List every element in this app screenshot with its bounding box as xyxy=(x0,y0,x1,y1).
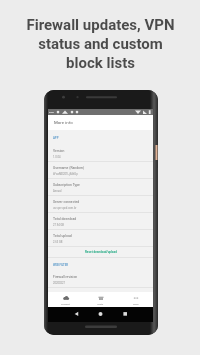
button[interactable]: Reset download/upload xyxy=(48,247,153,257)
staticText: Version xyxy=(53,149,65,153)
staticText: Reset download/upload xyxy=(85,250,117,254)
staticText: bFaoMD201LjXdhGp xyxy=(53,172,78,175)
button[interactable]: Version xyxy=(48,145,153,162)
staticText: 9:04 xyxy=(49,111,54,114)
staticText: Annual xyxy=(53,189,62,192)
staticText: Username (Random) xyxy=(53,166,85,170)
button[interactable]: Total download xyxy=(48,213,153,230)
button[interactable]: Connect xyxy=(48,292,83,306)
staticText: us.vpn.vpxd.com.br xyxy=(53,206,77,209)
staticText: Subscription Type xyxy=(53,183,80,187)
staticText: Firewall revision xyxy=(53,275,78,279)
button[interactable]: More xyxy=(118,292,153,306)
staticText: 2.63 GB xyxy=(53,240,63,243)
staticText: APP xyxy=(53,136,59,139)
staticText: Total download xyxy=(53,217,77,221)
button[interactable]: Firewall revision xyxy=(48,271,153,288)
staticText: 27.94 GB xyxy=(53,223,64,226)
button[interactable]: Total upload xyxy=(48,230,153,247)
button[interactable]: Username (Random) xyxy=(48,162,153,179)
button[interactable]: Alerts xyxy=(83,292,118,306)
staticText: More info xyxy=(54,120,73,125)
staticText: Server connected xyxy=(53,200,80,204)
button[interactable]: Subscription Type xyxy=(48,179,153,196)
staticText: Firewall updates, VPN status and custom … xyxy=(26,16,175,71)
staticText: Connect xyxy=(61,303,70,306)
staticText: Total upload xyxy=(53,234,72,238)
staticText: WEB FILTER xyxy=(53,263,69,266)
staticText: 20200227 xyxy=(53,281,66,284)
staticText: Alerts xyxy=(97,303,104,306)
button[interactable]: Server connected xyxy=(48,196,153,213)
staticText: More xyxy=(133,303,139,306)
staticText: 1.0.04 xyxy=(53,155,61,158)
